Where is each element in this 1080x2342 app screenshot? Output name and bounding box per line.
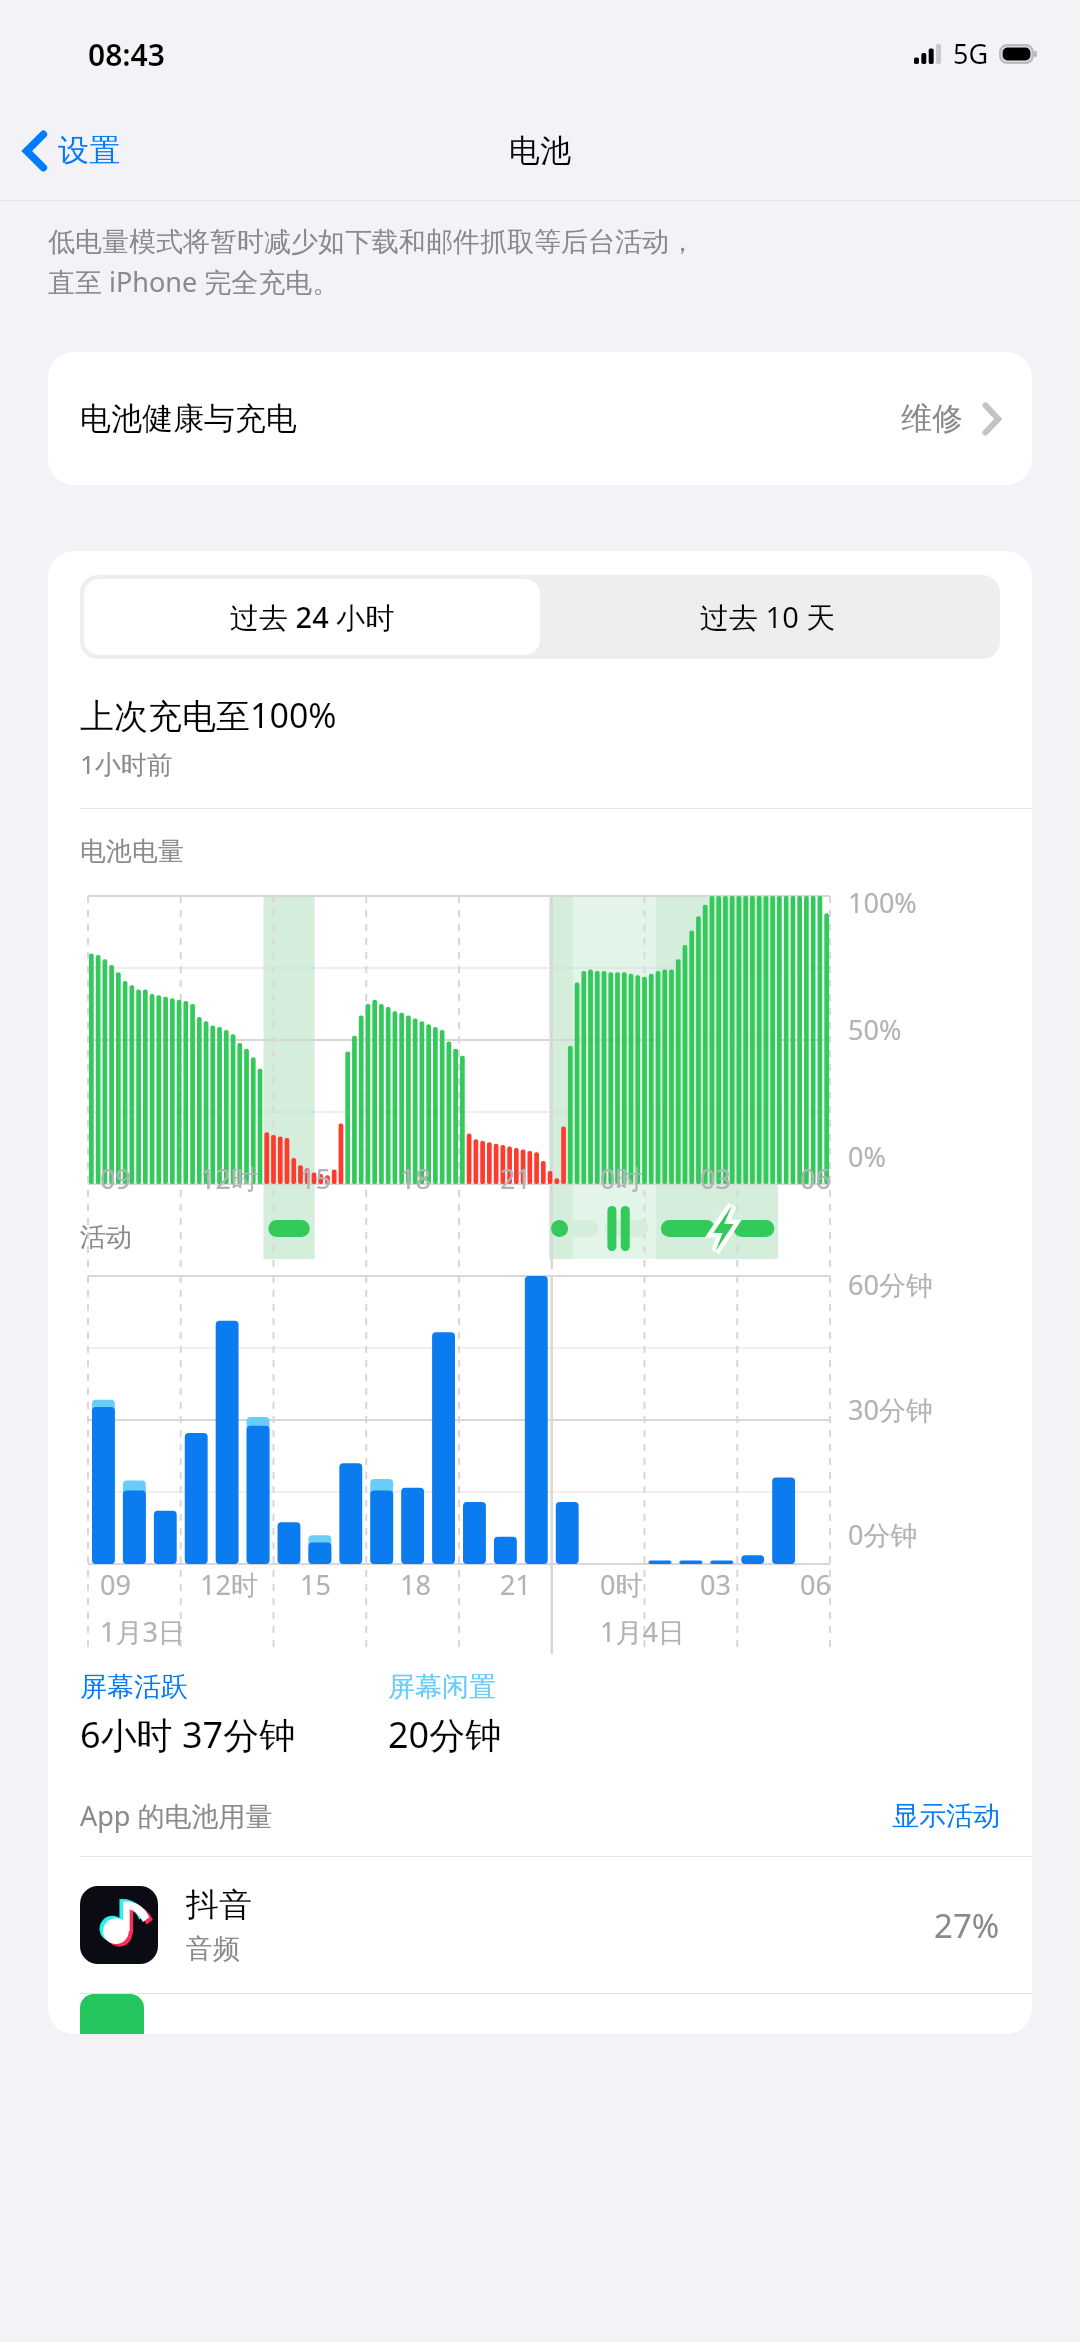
staticText: 12时 (200, 1160, 258, 1197)
staticText: 屏幕活跃 (80, 1670, 188, 1704)
staticText: 0时 (600, 1566, 643, 1603)
staticText: 屏幕闲置 (388, 1670, 496, 1704)
staticText: 0分钟 (848, 1516, 918, 1553)
button[interactable]: 设置 (0, 121, 136, 180)
staticText: 维修 (901, 399, 963, 438)
staticText: 09 (100, 1160, 131, 1197)
button[interactable]: 抖音 (48, 1857, 1032, 1993)
staticText: 6小时 37分钟 (80, 1710, 296, 1759)
staticText: 18 (400, 1160, 431, 1197)
staticText: 过去 24 小时 (230, 597, 395, 637)
staticText: 1小时前 (80, 746, 173, 782)
staticText: 06 (800, 1566, 831, 1603)
staticText: 21 (500, 1566, 531, 1603)
button[interactable]: 屏幕活跃 (80, 1670, 188, 1704)
staticText: 电池电量 (80, 835, 184, 868)
staticText: 27% (934, 1903, 1000, 1948)
staticText: 电池健康与充电 (80, 399, 297, 438)
button[interactable]: 过去 10 天 (540, 579, 996, 655)
staticText: 0% (848, 1138, 886, 1175)
staticText: 活动 (80, 1221, 132, 1254)
staticText: 15 (300, 1160, 331, 1197)
staticText: 音频 (186, 1932, 240, 1966)
staticText: 60分钟 (848, 1266, 933, 1303)
staticText: 过去 10 天 (700, 597, 836, 637)
staticText: 15 (300, 1566, 331, 1603)
staticText: 1月3日 (100, 1613, 185, 1650)
button[interactable]: 屏幕闲置 (388, 1670, 496, 1704)
staticText: 09 (100, 1566, 131, 1603)
staticText: App 的电池用量 (80, 1797, 273, 1834)
staticText: 03 (700, 1160, 731, 1197)
staticText: 抖音 (186, 1884, 252, 1926)
staticText: 20分钟 (388, 1710, 502, 1759)
staticText: 100% (848, 884, 917, 921)
button[interactable]: 显示活动 (892, 1799, 1000, 1833)
staticText: 30分钟 (848, 1391, 933, 1428)
staticText: 显示活动 (892, 1799, 1000, 1833)
staticText: 03 (700, 1566, 731, 1603)
staticText: 08:43 (88, 34, 165, 75)
staticText: 12时 (200, 1566, 258, 1603)
staticText: 设置 (58, 131, 120, 170)
staticText: 5G (953, 35, 989, 72)
staticText: 50% (848, 1011, 902, 1048)
staticText: 18 (400, 1566, 431, 1603)
staticText: 0时 (600, 1160, 643, 1197)
staticText: 低电量模式将暂时减少如下载和邮件抓取等后台活动， 直至 iPhone 完全充电。 (48, 225, 696, 300)
staticText: 06 (800, 1160, 831, 1197)
staticText: 1月4日 (600, 1613, 685, 1650)
staticText: 21 (500, 1160, 531, 1197)
staticText: 电池 (509, 131, 571, 170)
staticText: 上次充电至100% (80, 692, 337, 738)
button[interactable]: 过去 24 小时 (84, 579, 540, 655)
button[interactable]: 电池健康与充电 (48, 352, 1032, 485)
